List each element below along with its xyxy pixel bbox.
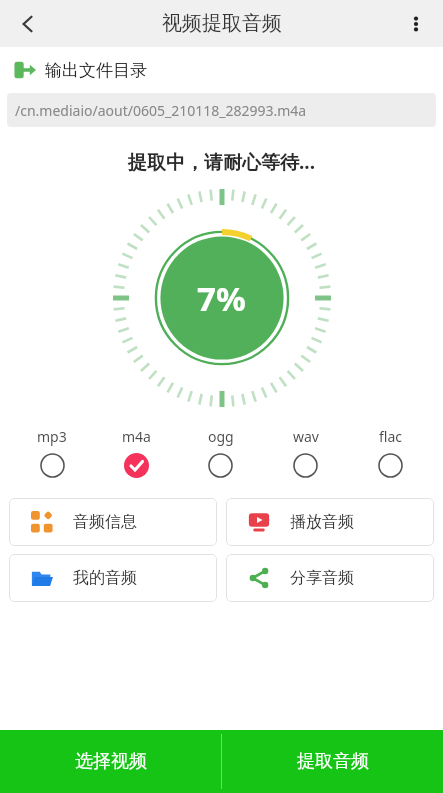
staticText: m4a (122, 427, 151, 446)
staticText: mp3 (37, 427, 67, 446)
button[interactable]: 提取音频 (222, 730, 443, 793)
staticText: 7% (197, 276, 246, 321)
button[interactable]: 选择视频 (0, 730, 221, 793)
staticText: 提取中，请耐心等待... (0, 149, 443, 175)
button[interactable]: 输出文件目录 (0, 47, 443, 93)
staticText: 分享音频 (290, 568, 354, 588)
button[interactable]: mp3 (10, 423, 94, 482)
staticText: 我的音频 (73, 568, 137, 588)
button[interactable]: More options (396, 4, 436, 44)
staticText: 选择视频 (75, 750, 147, 773)
staticText: flac (379, 427, 403, 446)
button[interactable]: Back (6, 2, 50, 46)
button[interactable]: wav (263, 423, 348, 482)
button[interactable]: m4a (94, 423, 178, 482)
staticText: wav (293, 427, 319, 446)
button[interactable]: 分享音频 (226, 554, 434, 602)
button[interactable]: flac (348, 423, 433, 482)
staticText: 播放音频 (290, 512, 354, 532)
button[interactable]: ogg (178, 423, 263, 482)
button[interactable]: 播放音频 (226, 498, 434, 546)
staticText: 提取音频 (297, 750, 369, 773)
button[interactable]: /cn.mediaio/aout/0605_210118_282993.m4a (7, 93, 436, 127)
button[interactable]: 音频信息 (9, 498, 217, 546)
staticText: 输出文件目录 (45, 60, 147, 81)
staticText: ogg (208, 427, 234, 446)
staticText: /cn.mediaio/aout/0605_210118_282993.m4a (15, 101, 307, 120)
staticText: 音频信息 (73, 512, 137, 532)
button[interactable]: 我的音频 (9, 554, 217, 602)
staticText: 视频提取音频 (162, 11, 282, 36)
